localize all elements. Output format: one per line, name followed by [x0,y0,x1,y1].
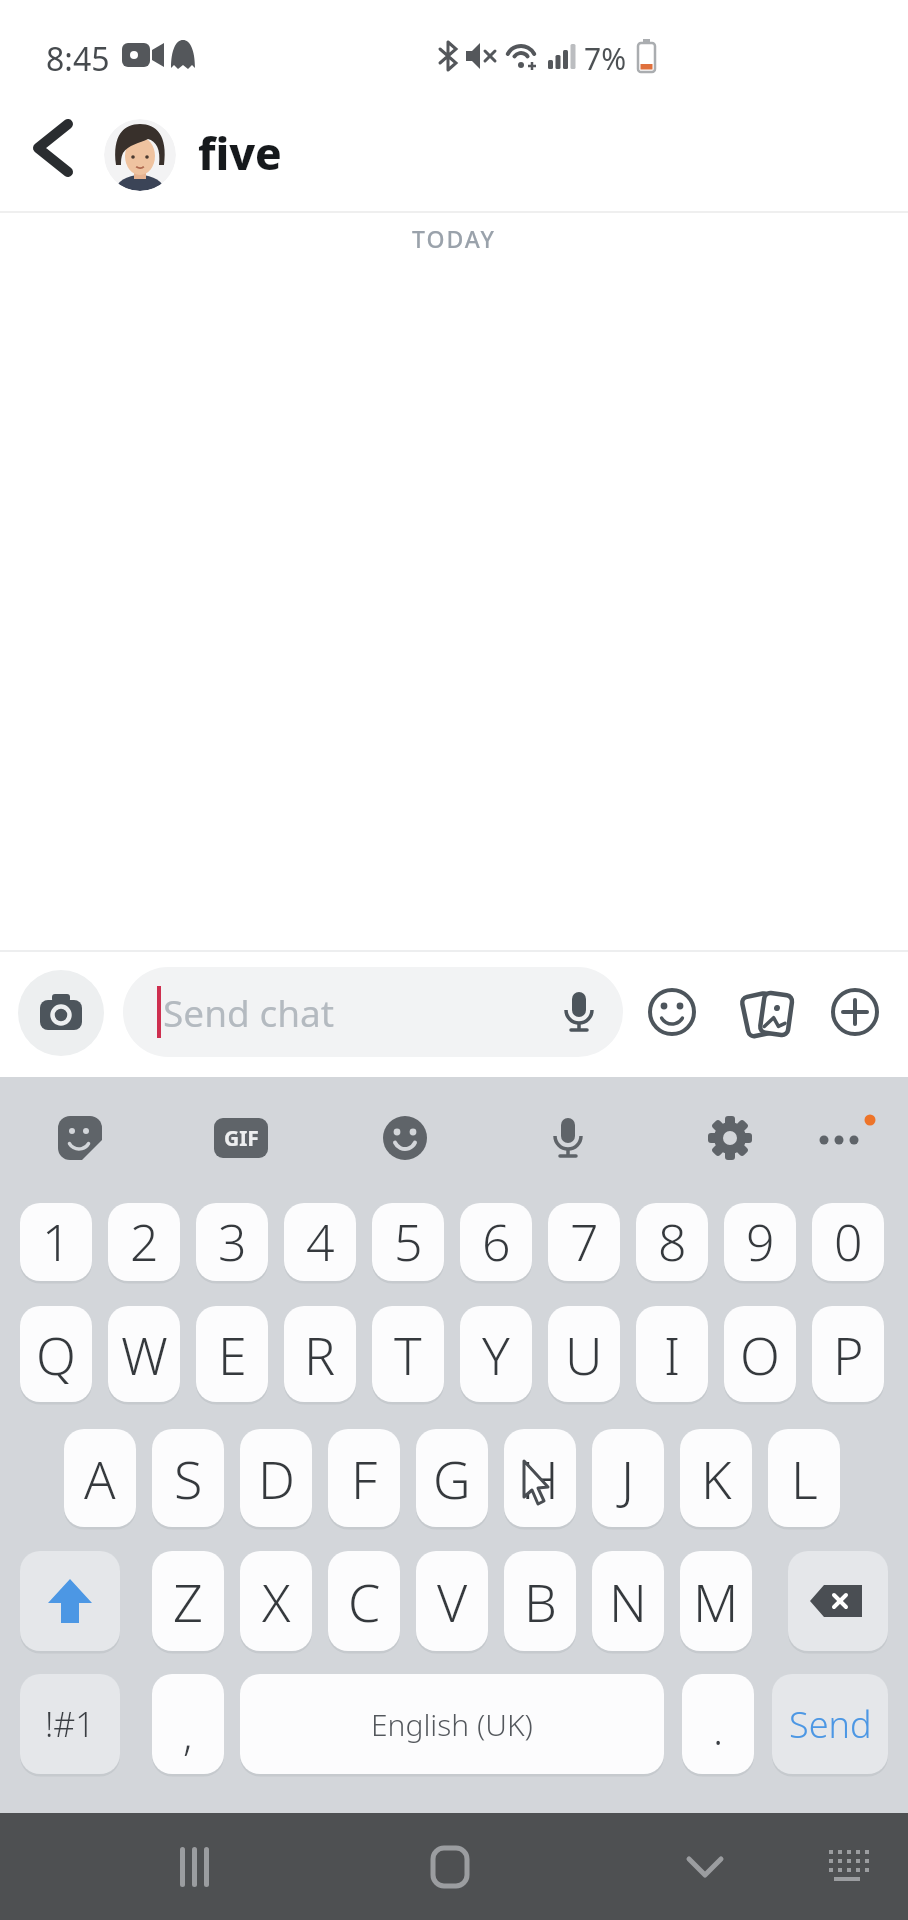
button[interactable]: I [636,1306,708,1402]
button[interactable]: P [812,1306,884,1402]
staticText: Send [789,1700,872,1749]
button[interactable] [104,119,176,191]
staticText: Z [173,1566,203,1637]
button[interactable]: H [504,1429,576,1527]
staticText: 4 [306,1208,335,1276]
staticText: D [258,1443,295,1514]
staticText: TODAY [412,223,496,254]
staticText: 5 [394,1208,423,1276]
button[interactable]: G [416,1429,488,1527]
button[interactable]: E [196,1306,268,1402]
staticText: U [565,1319,603,1390]
staticText: 7 [570,1208,599,1276]
button[interactable]: !#1 [20,1674,120,1774]
staticText: B [524,1566,557,1637]
staticText: English (UK) [371,1704,533,1745]
staticText: 1 [42,1208,71,1276]
button[interactable] [646,986,698,1038]
button[interactable]: L [768,1429,840,1527]
button[interactable]: V [416,1551,488,1651]
staticText: 9 [746,1208,775,1276]
button[interactable]: X [240,1551,312,1651]
button[interactable] [415,1835,485,1899]
staticText: R [304,1319,336,1390]
button[interactable]: 1 [20,1203,92,1281]
staticText: M [693,1566,739,1637]
button[interactable]: GIF [214,1118,268,1158]
staticText: E [218,1319,247,1390]
staticText: . [713,1700,724,1757]
button[interactable] [540,1110,596,1166]
staticText: X [262,1566,291,1637]
staticText: K [701,1443,732,1514]
button[interactable]: . [682,1674,754,1774]
staticText: Q [36,1319,76,1390]
staticText: J [621,1443,635,1514]
button[interactable]: 6 [460,1203,532,1281]
staticText: W [121,1319,168,1390]
button[interactable]: K [680,1429,752,1527]
staticText: 2 [130,1208,159,1276]
button[interactable]: 0 [812,1203,884,1281]
staticText: 7% [584,38,627,79]
button[interactable]: N [592,1551,664,1651]
button[interactable] [52,1110,108,1166]
button[interactable]: 9 [724,1203,796,1281]
staticText: H [521,1443,559,1514]
button[interactable]: W [108,1306,180,1402]
staticText: G [433,1443,471,1514]
button[interactable]: Z [152,1551,224,1651]
button[interactable] [829,986,881,1038]
button[interactable]: S [152,1429,224,1527]
button[interactable]: M [680,1551,752,1651]
button[interactable]: Send chat [123,967,623,1057]
button[interactable]: T [372,1306,444,1402]
staticText: 0 [834,1208,863,1276]
button[interactable] [22,120,78,176]
button[interactable]: F [328,1429,400,1527]
button[interactable]: 5 [372,1203,444,1281]
staticText: GIF [224,1124,259,1153]
staticText: Send chat [163,987,335,1037]
button[interactable]: English (UK) [240,1674,664,1774]
button[interactable]: R [284,1306,356,1402]
button[interactable]: U [548,1306,620,1402]
button[interactable]: C [328,1551,400,1651]
button[interactable] [812,1110,878,1176]
button[interactable] [670,1835,740,1899]
button[interactable] [812,1835,882,1899]
button[interactable]: 2 [108,1203,180,1281]
staticText: 8:45 [46,37,110,81]
button[interactable] [20,1551,120,1651]
button[interactable] [702,1110,758,1166]
button[interactable] [788,1551,888,1651]
staticText: L [791,1443,818,1514]
button[interactable] [557,990,601,1034]
staticText: A [84,1443,116,1514]
button[interactable]: Send [772,1674,888,1774]
button[interactable]: O [724,1306,796,1402]
staticText: C [348,1566,381,1637]
button[interactable]: A [64,1429,136,1527]
staticText: O [740,1319,780,1390]
button[interactable]: Q [20,1306,92,1402]
staticText: !#1 [45,1701,95,1747]
button[interactable]: 7 [548,1203,620,1281]
staticText: S [174,1443,203,1514]
button[interactable] [377,1110,433,1166]
button[interactable] [736,986,794,1044]
staticText: , [183,1706,193,1763]
button[interactable]: , [152,1674,224,1774]
button[interactable]: 4 [284,1203,356,1281]
button[interactable]: J [592,1429,664,1527]
button[interactable]: 3 [196,1203,268,1281]
button[interactable]: D [240,1429,312,1527]
staticText: five [198,123,282,183]
button[interactable]: Y [460,1306,532,1402]
button[interactable] [160,1835,230,1899]
button[interactable]: 8 [636,1203,708,1281]
staticText: I [664,1319,681,1390]
button[interactable] [18,970,104,1056]
staticText: V [437,1566,468,1637]
button[interactable]: B [504,1551,576,1651]
